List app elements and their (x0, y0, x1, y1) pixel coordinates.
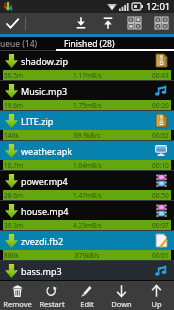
staticText: 30.3m (4, 221, 23, 230)
button[interactable]: Download (75, 17, 87, 29)
button[interactable]: Edit (69, 281, 104, 310)
staticText: 10.7m (4, 161, 23, 170)
staticText: 00:02 (152, 131, 169, 140)
staticText: 1.64mB/s (73, 161, 102, 170)
staticText: 12:01 (146, 0, 171, 13)
button[interactable]: Done (0, 13, 25, 33)
button[interactable]: Remove (0, 281, 34, 310)
staticText: 00:20 (152, 101, 169, 110)
staticText: 4.23mB/s (73, 221, 102, 230)
staticText: Finished (28) (64, 38, 115, 50)
button[interactable]: Restart (34, 281, 69, 310)
button[interactable]: LITE.zip (0, 111, 174, 141)
button[interactable]: Select all (128, 17, 141, 29)
staticText: 00:50 (152, 191, 169, 200)
staticText: house.mp4 (21, 205, 69, 217)
staticText: Restart (39, 299, 65, 309)
staticText: power.mp4 (21, 175, 68, 187)
staticText: 1.47mB/s (73, 191, 102, 200)
button[interactable]: Music.mp3 (0, 81, 174, 111)
staticText: 00:07 (152, 221, 169, 230)
staticText: 00:10 (152, 161, 169, 170)
staticText: zvezdi.fb2 (21, 235, 64, 247)
staticText: 1.75mB/s (73, 101, 102, 110)
button[interactable]: zvezdi.fb2 (0, 231, 174, 261)
button[interactable]: Finished (28) (56, 37, 174, 51)
staticText: 880k (4, 251, 19, 260)
button[interactable]: bass.mp3 (0, 261, 174, 280)
staticText: 140k (4, 131, 19, 140)
staticText: 50.5m (4, 71, 23, 80)
staticText: Edit (80, 299, 94, 309)
button[interactable]: power.mp4 (0, 171, 174, 201)
button[interactable]: shadow.zip (0, 51, 174, 81)
button[interactable]: weather.apk (0, 141, 174, 171)
button[interactable]: Up (139, 281, 174, 310)
button[interactable]: house.mp4 (0, 201, 174, 231)
staticText: 19.6m (4, 101, 23, 110)
staticText: Up (151, 299, 162, 309)
staticText: 1.17mB/s (73, 71, 102, 80)
staticText: Remove (3, 299, 32, 309)
button[interactable]: Deselect all (155, 17, 168, 29)
staticText: 28.6m (4, 191, 23, 200)
button[interactable]: Down (104, 281, 139, 310)
staticText: 00:43 (152, 71, 169, 80)
button[interactable]: Upload (102, 17, 114, 29)
staticText: bass.mp3 (21, 265, 62, 277)
staticText: ueue (14) (0, 38, 38, 50)
staticText: shadow.zip (21, 55, 68, 67)
staticText: 00:01 (152, 251, 169, 260)
staticText: weather.apk (21, 145, 73, 157)
staticText: Music.mp3 (21, 85, 68, 97)
staticText: Down (111, 299, 132, 309)
staticText: LITE.zip (21, 115, 54, 127)
staticText: 69.9kB/s (74, 131, 101, 140)
staticText: 879kB/s (75, 251, 100, 260)
button[interactable]: ueue (14) (0, 37, 56, 51)
